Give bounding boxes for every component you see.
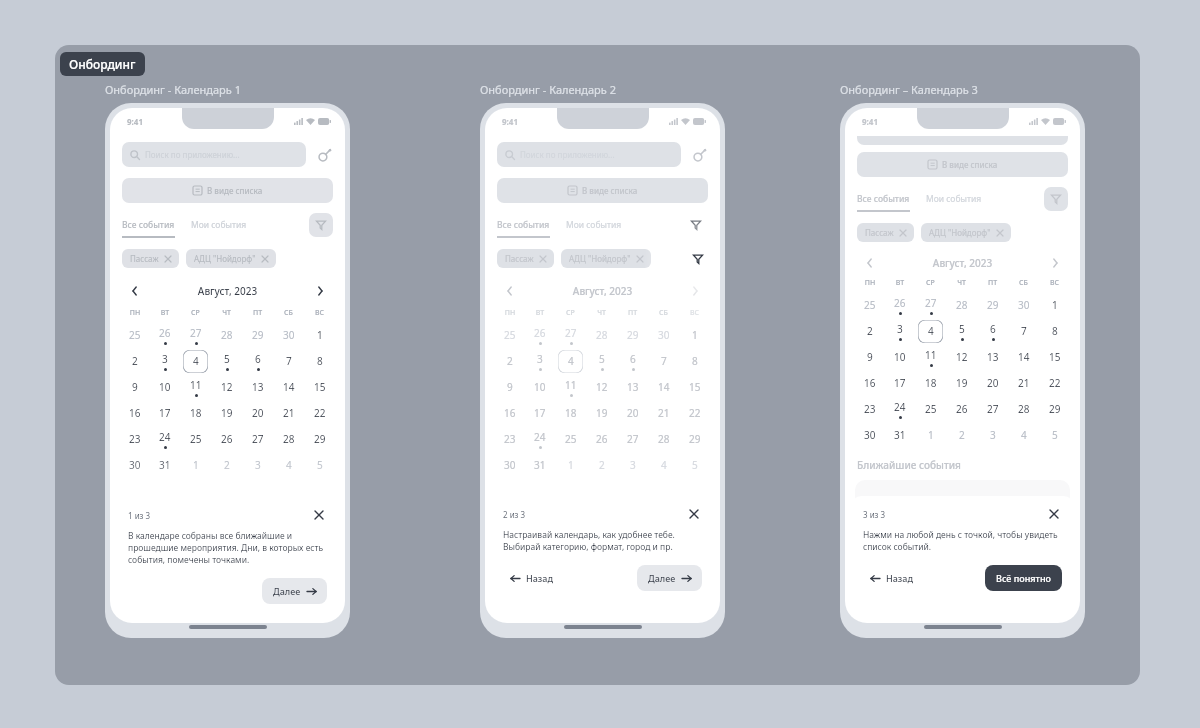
button[interactable]: 28	[1008, 396, 1039, 422]
button[interactable]: АДЦ "Нойдорф"	[186, 249, 276, 268]
button[interactable]: 5	[304, 452, 335, 478]
button[interactable]: 2	[586, 452, 617, 478]
button[interactable]: Предыдущий месяц	[501, 282, 519, 300]
button[interactable]: 22	[679, 400, 710, 426]
button[interactable]: Фильтр	[686, 247, 710, 271]
button[interactable]: Назад	[503, 566, 561, 590]
button[interactable]: 25	[915, 396, 946, 422]
button[interactable]: 5	[586, 348, 617, 374]
button[interactable]: 12	[586, 374, 617, 400]
button[interactable]: 23	[855, 396, 885, 422]
button[interactable]: Закрыть	[1046, 506, 1062, 522]
button[interactable]: 4	[915, 318, 946, 344]
button[interactable]: Следующий месяц	[686, 282, 704, 300]
button[interactable]: Далее	[262, 578, 327, 604]
button[interactable]: Пассаж	[857, 223, 914, 242]
button[interactable]: Следующий месяц	[1046, 254, 1064, 272]
button[interactable]: Пассаж	[497, 249, 554, 268]
button[interactable]: 1	[304, 322, 335, 348]
button[interactable]: 28	[946, 292, 977, 318]
button[interactable]: 4	[180, 348, 211, 374]
button[interactable]: 7	[648, 348, 679, 374]
button[interactable]: Фильтр	[1044, 187, 1068, 211]
button[interactable]: 11	[915, 344, 946, 370]
button[interactable]: 26	[946, 396, 977, 422]
button[interactable]: Фильтр	[684, 213, 708, 237]
button[interactable]: 31	[150, 452, 180, 478]
button[interactable]: 26	[885, 292, 915, 318]
button[interactable]: 17	[885, 370, 915, 396]
button[interactable]: Настройки уведомлений	[315, 146, 333, 164]
button[interactable]: Назад	[863, 566, 921, 590]
button[interactable]: Мои события	[191, 219, 247, 238]
button[interactable]: 19	[586, 400, 617, 426]
button[interactable]: 21	[648, 400, 679, 426]
button[interactable]: В виде списка	[122, 178, 333, 203]
button[interactable]: Онбординг	[60, 52, 145, 76]
button[interactable]: 20	[242, 400, 273, 426]
button[interactable]: 28	[273, 426, 304, 452]
button[interactable]: 28	[586, 322, 617, 348]
button[interactable]: Предыдущий месяц	[861, 254, 879, 272]
button[interactable]: Все события	[122, 219, 175, 238]
button[interactable]: 15	[1039, 344, 1070, 370]
button[interactable]: 3	[885, 318, 915, 344]
button[interactable]: 31	[885, 422, 915, 448]
button[interactable]: 5	[1039, 422, 1070, 448]
button[interactable]: 14	[1008, 344, 1039, 370]
button[interactable]: 1	[1039, 292, 1070, 318]
button[interactable]: 20	[977, 370, 1008, 396]
button[interactable]: 27	[977, 396, 1008, 422]
button[interactable]: 29	[242, 322, 273, 348]
button[interactable]: 26	[525, 322, 555, 348]
button[interactable]: АДЦ "Нойдорф"	[921, 223, 1011, 242]
button[interactable]: Закрыть	[686, 506, 702, 522]
button[interactable]: 29	[617, 322, 648, 348]
button[interactable]: 10	[885, 344, 915, 370]
button[interactable]: 5	[946, 318, 977, 344]
button[interactable]: Поиск по приложению...	[497, 142, 681, 167]
button[interactable]: 22	[1039, 370, 1070, 396]
button[interactable]: 17	[525, 400, 555, 426]
button[interactable]: В виде списка	[857, 152, 1068, 177]
button[interactable]: 2	[120, 348, 150, 374]
button[interactable]: 8	[304, 348, 335, 374]
button[interactable]: Закрыть	[311, 507, 327, 523]
button[interactable]: 13	[617, 374, 648, 400]
button[interactable]: Пассаж	[122, 249, 179, 268]
button[interactable]: АДЦ "Нойдорф"	[561, 249, 651, 268]
button[interactable]: 5	[211, 348, 242, 374]
button[interactable]: 30	[120, 452, 150, 478]
button[interactable]: Следующий месяц	[311, 282, 329, 300]
button[interactable]: 27	[617, 426, 648, 452]
button[interactable]: 1	[555, 452, 586, 478]
button[interactable]: 29	[679, 426, 710, 452]
button[interactable]: Далее	[637, 565, 702, 591]
button[interactable]: 7	[273, 348, 304, 374]
button[interactable]: Всё понятно	[985, 565, 1062, 591]
button[interactable]: 2	[495, 348, 525, 374]
button[interactable]: 27	[555, 322, 586, 348]
button[interactable]: 12	[946, 344, 977, 370]
button[interactable]: 2	[211, 452, 242, 478]
button[interactable]: 19	[946, 370, 977, 396]
button[interactable]: 3	[242, 452, 273, 478]
button[interactable]: 25	[555, 426, 586, 452]
button[interactable]: 4	[648, 452, 679, 478]
button[interactable]: 21	[273, 400, 304, 426]
button[interactable]: 19	[211, 400, 242, 426]
button[interactable]: 27	[242, 426, 273, 452]
button[interactable]: 16	[855, 370, 885, 396]
button[interactable]: 8	[679, 348, 710, 374]
button[interactable]: 12	[211, 374, 242, 400]
button[interactable]: 30	[1008, 292, 1039, 318]
button[interactable]: 21	[1008, 370, 1039, 396]
button[interactable]: Мои события	[566, 219, 622, 238]
button[interactable]: 11	[180, 374, 211, 400]
button[interactable]: 28	[211, 322, 242, 348]
button[interactable]: 26	[211, 426, 242, 452]
button[interactable]: 11	[555, 374, 586, 400]
button[interactable]: 17	[150, 400, 180, 426]
button[interactable]: 18	[915, 370, 946, 396]
button[interactable]: 7	[1008, 318, 1039, 344]
